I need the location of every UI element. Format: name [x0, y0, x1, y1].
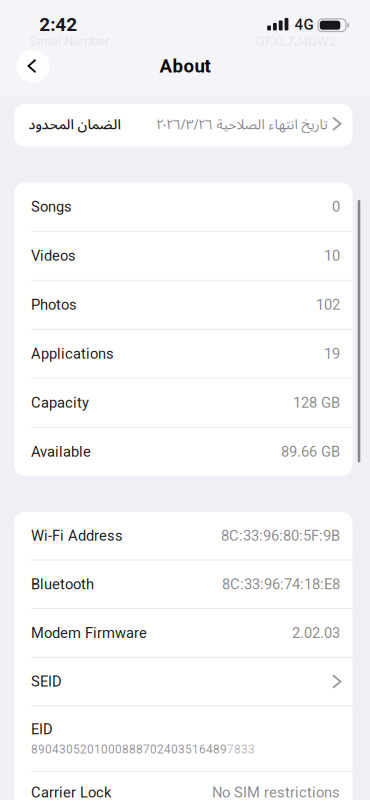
staticText: No SIM restrictions — [212, 784, 340, 800]
staticText: 102 — [316, 296, 340, 313]
button[interactable]: Back — [16, 49, 49, 82]
staticText: Modem Firmware — [31, 624, 147, 641]
staticText: Photos — [31, 296, 77, 313]
staticText: About — [159, 55, 210, 77]
staticText: 128 GB — [293, 394, 340, 411]
staticText: 4G — [294, 16, 313, 33]
staticText: الضمان المحدود — [28, 114, 120, 133]
staticText: Available — [31, 443, 91, 460]
staticText: 8C:33:96:80:5F:9B — [221, 527, 340, 544]
staticText: 19 — [324, 345, 340, 362]
staticText: 89.66 GB — [281, 443, 340, 460]
staticText: GFXL7J4QW2 — [256, 33, 336, 48]
button[interactable]: الضمان المحدود — [14, 104, 352, 146]
staticText: 2.02.03 — [292, 624, 340, 641]
staticText: Carrier Lock — [31, 784, 111, 800]
staticText: Wi-Fi Address — [31, 527, 123, 544]
staticText: 10 — [324, 247, 340, 264]
staticText: Videos — [31, 247, 76, 264]
staticText: SEID — [31, 673, 62, 690]
staticText: Bluetooth — [31, 576, 94, 593]
button[interactable]: SEID — [14, 658, 352, 705]
staticText: تاريخ انتهاء الصلاحية ٢٠٢٦/٣/٢٦ — [156, 114, 327, 133]
staticText: 8904305201000888702403516489 — [31, 743, 227, 756]
staticText: 8C:33:96:74:18:E8 — [222, 576, 340, 593]
staticText: 7833 — [227, 743, 255, 756]
staticText: Songs — [31, 198, 72, 215]
staticText: EID — [31, 721, 53, 738]
staticText: 2:42 — [39, 14, 77, 35]
staticText: Serial Number — [29, 33, 109, 48]
staticText: Applications — [31, 345, 114, 362]
staticText: Capacity — [31, 394, 89, 411]
staticText: 0 — [332, 198, 340, 215]
